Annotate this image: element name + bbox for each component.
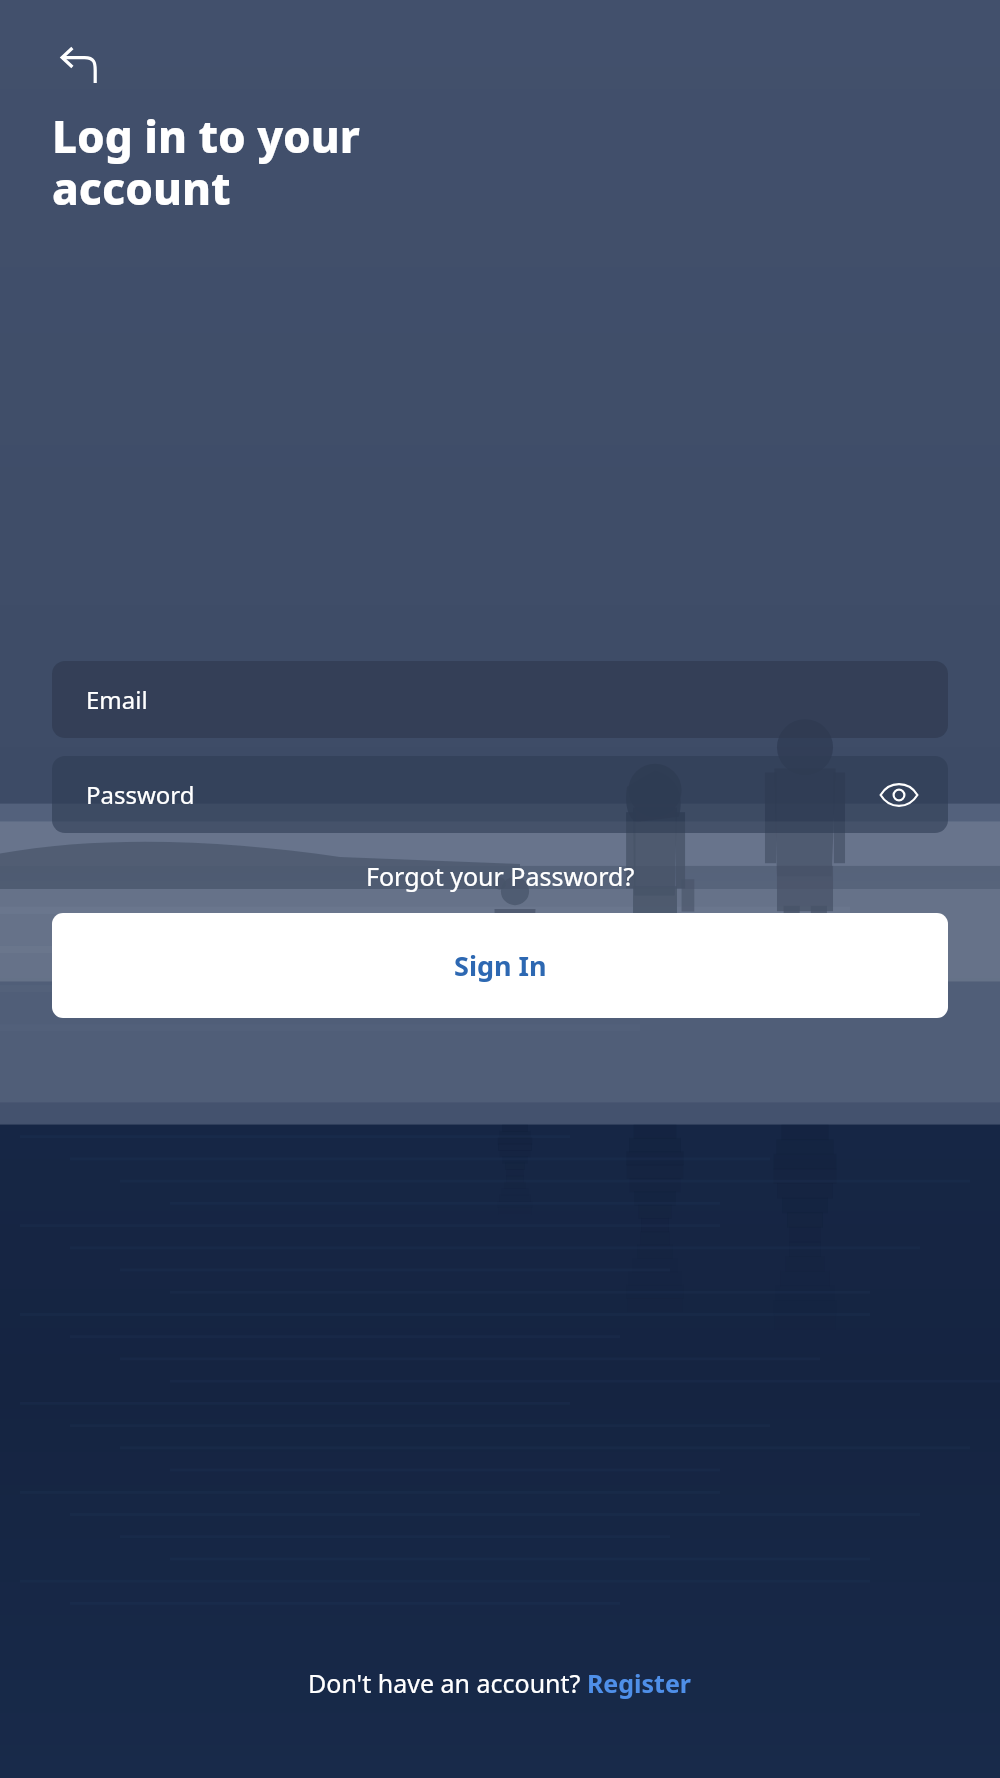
button[interactable]: Show password (872, 768, 926, 822)
staticText: Email (86, 683, 148, 716)
button[interactable]: Don't have an account? Register (298, 1660, 702, 1706)
staticText: Forgot your Password? (366, 859, 635, 893)
staticText: Sign In (454, 947, 547, 984)
button[interactable]: Email (52, 661, 948, 738)
button[interactable]: Forgot your Password? (354, 855, 647, 897)
staticText: Don't have an account? Register (308, 1666, 692, 1700)
button[interactable]: Password (52, 756, 948, 833)
staticText: Password (86, 778, 195, 811)
staticText: Log in to your account (52, 106, 360, 218)
button[interactable]: Sign In (52, 913, 948, 1018)
button[interactable]: Back (52, 36, 108, 92)
